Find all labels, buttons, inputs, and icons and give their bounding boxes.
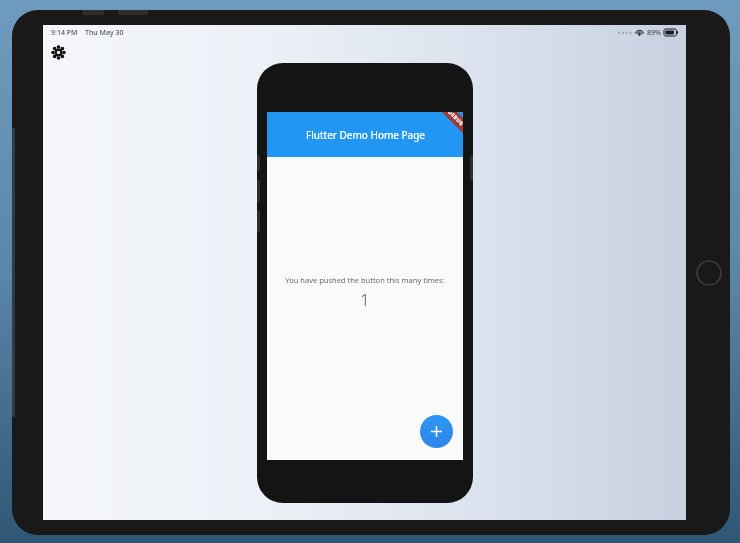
button[interactable]: Settings [48,42,68,62]
staticText: 9:14 PM [51,28,78,38]
staticText: Flutter Demo Home Page [306,128,425,142]
staticText: DEBUG [446,112,463,128]
staticText: 89% [647,28,661,38]
button[interactable]: Increment [420,415,453,448]
staticText: Thu May 30 [85,28,124,38]
button[interactable]: Home [696,260,722,286]
staticText: You have pushed the button this many tim… [285,275,445,285]
staticText: 1 [360,288,370,311]
